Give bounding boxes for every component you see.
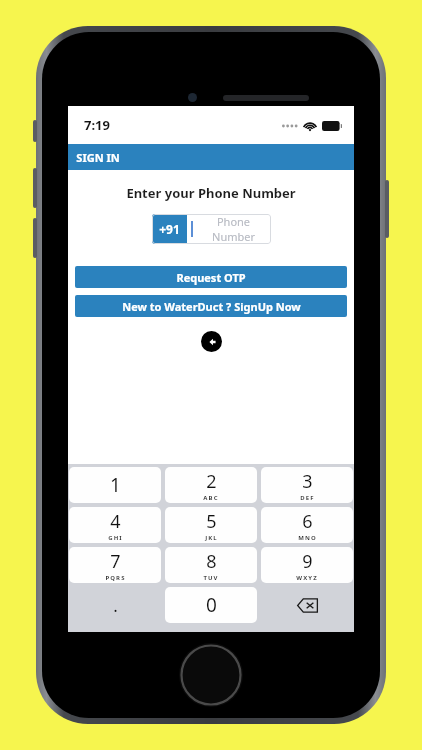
staticText: MNO bbox=[298, 534, 317, 542]
staticText: 5 bbox=[206, 509, 217, 534]
staticText: JKL bbox=[205, 534, 218, 542]
staticText: 9 bbox=[302, 549, 313, 574]
staticText: 4 bbox=[110, 509, 121, 534]
button[interactable]: 3 bbox=[261, 467, 353, 503]
staticText: 1 bbox=[110, 472, 121, 498]
staticText: 8 bbox=[206, 549, 217, 574]
staticText: Enter your Phone Number bbox=[126, 184, 296, 202]
staticText: New to WaterDuct ? SignUp Now bbox=[122, 299, 301, 314]
button[interactable]: 5 bbox=[165, 507, 257, 543]
staticText: 0 bbox=[206, 592, 217, 618]
button[interactable]: 6 bbox=[261, 507, 353, 543]
staticText: GHI bbox=[108, 534, 123, 542]
staticText: Request OTP bbox=[176, 270, 246, 285]
button[interactable]: 8 bbox=[165, 547, 257, 583]
staticText: 7:19 bbox=[84, 116, 110, 134]
staticText: +91 bbox=[159, 221, 180, 237]
button[interactable]: 9 bbox=[261, 547, 353, 583]
staticText: 2 bbox=[206, 469, 217, 494]
button[interactable]: 1 bbox=[69, 467, 161, 503]
staticText: WXYZ bbox=[296, 574, 318, 582]
staticText: 6 bbox=[302, 509, 313, 534]
button[interactable]: 0 bbox=[165, 587, 257, 623]
button[interactable]: SIGN IN bbox=[68, 144, 354, 170]
staticText: 3 bbox=[302, 469, 313, 494]
button[interactable]: Back bbox=[201, 331, 222, 352]
button[interactable]: 2 bbox=[165, 467, 257, 503]
staticText: PQRS bbox=[105, 574, 126, 582]
button[interactable]: 7 bbox=[69, 547, 161, 583]
button[interactable]: . bbox=[69, 587, 161, 623]
staticText: . bbox=[113, 594, 118, 617]
button[interactable]: Request OTP bbox=[75, 266, 347, 288]
staticText: SIGN IN bbox=[76, 150, 120, 165]
staticText: 7 bbox=[110, 549, 121, 574]
staticText: DEF bbox=[300, 494, 315, 502]
staticText: TUV bbox=[203, 574, 219, 582]
button[interactable]: New to WaterDuct ? SignUp Now bbox=[75, 295, 347, 317]
staticText: ABC bbox=[203, 494, 219, 502]
button[interactable]: 4 bbox=[69, 507, 161, 543]
button[interactable]: Backspace bbox=[261, 587, 353, 623]
staticText: Phone Number bbox=[196, 214, 271, 244]
button[interactable]: +91 bbox=[152, 214, 271, 244]
